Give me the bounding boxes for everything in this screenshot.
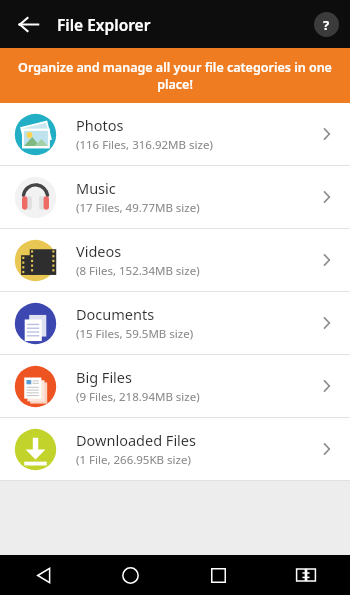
staticText: Downloaded Files xyxy=(76,430,196,450)
staticText: Big Files xyxy=(76,367,132,387)
button[interactable]: Back xyxy=(0,555,87,595)
staticText: Music xyxy=(76,178,116,198)
staticText: File Explorer xyxy=(57,14,151,35)
staticText: (9 Files, 218.94MB size) xyxy=(76,389,200,405)
button[interactable]: Back xyxy=(8,4,48,44)
button[interactable]: Photos xyxy=(0,103,350,165)
button[interactable]: Videos xyxy=(0,229,350,291)
staticText: Videos xyxy=(76,241,122,261)
staticText: (15 Files, 59.5MB size) xyxy=(76,326,194,342)
button[interactable]: Split screen xyxy=(262,555,350,595)
staticText: Documents xyxy=(76,304,155,324)
staticText: (17 Files, 49.77MB size) xyxy=(76,200,200,216)
staticText: (1 File, 266.95KB size) xyxy=(76,452,191,468)
staticText: ? xyxy=(323,16,330,34)
button[interactable]: Recent apps xyxy=(174,555,262,595)
staticText: (116 Files, 316.92MB size) xyxy=(76,137,213,153)
button[interactable]: Help xyxy=(314,12,339,37)
button[interactable]: Downloaded Files xyxy=(0,418,350,480)
button[interactable]: Home xyxy=(87,555,174,595)
staticText: Organize and manage all your file catego… xyxy=(16,59,334,93)
staticText: (8 Files, 152.34MB size) xyxy=(76,263,200,279)
button[interactable]: Big Files xyxy=(0,355,350,417)
button[interactable]: Organize and manage all your file catego… xyxy=(0,48,350,103)
button[interactable]: Documents xyxy=(0,292,350,354)
staticText: Photos xyxy=(76,115,124,135)
button[interactable]: Music xyxy=(0,166,350,228)
